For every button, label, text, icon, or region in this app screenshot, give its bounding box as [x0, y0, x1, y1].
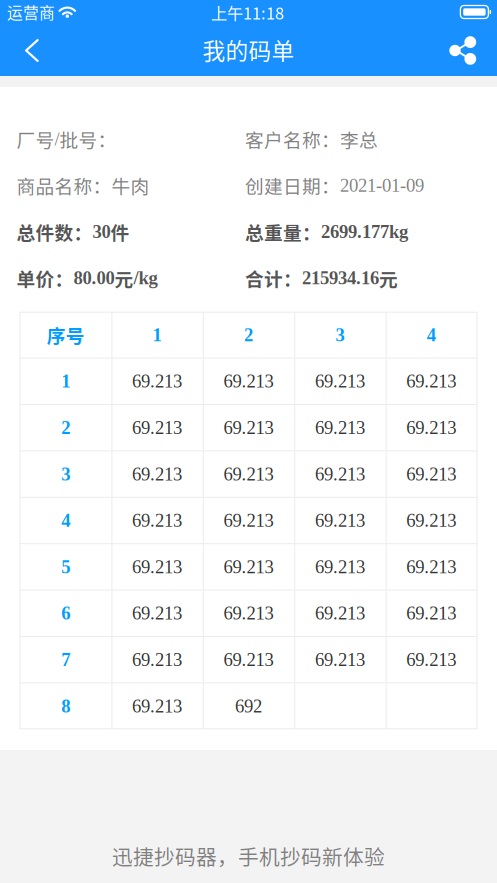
staticText: 序号 — [47, 321, 85, 348]
staticText: 元 — [114, 264, 133, 291]
staticText: 69.213 — [223, 557, 273, 577]
staticText: / — [54, 129, 59, 149]
staticText: 2 — [244, 325, 253, 345]
staticText: 80.00 — [73, 268, 114, 288]
staticText: 69.213 — [315, 510, 365, 531]
staticText: 6 — [61, 603, 70, 624]
staticText: 4 — [427, 325, 436, 345]
staticText: 69.213 — [406, 557, 456, 577]
staticText: 3 — [335, 325, 344, 345]
staticText: 客户名称： — [245, 126, 340, 153]
staticText: 3 — [61, 464, 70, 484]
staticText: 69.213 — [406, 510, 456, 531]
staticText: 69.213 — [132, 557, 182, 577]
staticText: 2699.177kg — [321, 221, 408, 242]
button[interactable]: 分享 — [437, 29, 489, 76]
staticText: 69.213 — [315, 464, 365, 484]
staticText: 迅捷抄码器，手机抄码新体验 — [112, 841, 385, 871]
button[interactable]: 返回 — [9, 29, 55, 76]
staticText: 69.213 — [315, 557, 365, 577]
staticText: 69.213 — [132, 696, 182, 716]
staticText: 69.213 — [406, 417, 456, 438]
staticText: 运营商 — [7, 1, 55, 23]
staticText: 单价： — [16, 264, 73, 291]
staticText: 商品名称： — [16, 172, 111, 199]
staticText: 69.213 — [132, 649, 182, 670]
staticText: 4 — [61, 510, 70, 531]
staticText: 69.213 — [132, 510, 182, 531]
staticText: 批号： — [59, 126, 116, 153]
staticText: 69.213 — [406, 603, 456, 624]
staticText: 69.213 — [223, 417, 273, 438]
staticText: 元 — [379, 264, 398, 291]
staticText: 69.213 — [223, 510, 273, 531]
staticText: 总件数： — [16, 218, 92, 245]
staticText: 2 — [61, 417, 70, 438]
staticText: 件 — [110, 218, 129, 245]
staticText: 69.213 — [315, 371, 365, 392]
staticText: 1 — [153, 325, 162, 345]
staticText: 69.213 — [315, 649, 365, 670]
staticText: 8 — [61, 696, 70, 716]
staticText: 69.213 — [406, 464, 456, 484]
staticText: 2021-01-09 — [340, 175, 424, 196]
staticText: 我的码单 — [202, 33, 294, 66]
staticText: /kg — [133, 268, 157, 288]
staticText: 李总 — [340, 126, 378, 153]
staticText: 69.213 — [223, 371, 273, 392]
staticText: 69.213 — [223, 464, 273, 484]
staticText: 69.213 — [223, 603, 273, 624]
staticText: 69.213 — [315, 417, 365, 438]
staticText: 69.213 — [406, 649, 456, 670]
staticText: 5 — [61, 557, 70, 577]
staticText: 1 — [61, 371, 70, 392]
staticText: 215934.16 — [302, 268, 379, 288]
staticText: 69.213 — [223, 649, 273, 670]
staticText: 69.213 — [315, 603, 365, 624]
staticText: 厂号 — [16, 126, 54, 153]
staticText: 合计： — [245, 264, 302, 291]
staticText: 30 — [92, 221, 110, 242]
staticText: 69.213 — [132, 464, 182, 484]
staticText: 69.213 — [132, 603, 182, 624]
staticText: 69.213 — [406, 371, 456, 392]
staticText: 69.213 — [132, 417, 182, 438]
staticText: 牛肉 — [111, 172, 149, 199]
staticText: 总重量： — [245, 218, 321, 245]
staticText: 69.213 — [132, 371, 182, 392]
staticText: 7 — [61, 649, 70, 670]
staticText: 创建日期： — [245, 172, 340, 199]
staticText: 上午11:18 — [211, 1, 284, 24]
staticText: 692 — [235, 696, 262, 716]
